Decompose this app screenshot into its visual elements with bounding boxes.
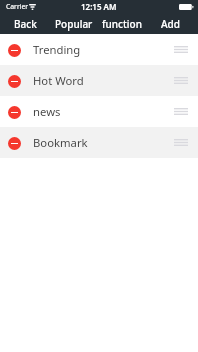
- staticText: Popular: [55, 17, 93, 31]
- button[interactable]: Add: [161, 14, 180, 28]
- staticText: Hot Word: [33, 73, 84, 88]
- button[interactable]: Delete: [8, 106, 21, 119]
- button[interactable]: Delete: [0, 96, 198, 127]
- button[interactable]: Delete: [0, 65, 198, 96]
- button[interactable]: Back: [14, 14, 37, 28]
- button[interactable]: Reorder: [174, 108, 188, 115]
- button[interactable]: Reorder: [174, 139, 188, 146]
- staticText: Trending: [33, 42, 81, 57]
- button[interactable]: Delete: [0, 34, 198, 65]
- staticText: Carrier: [6, 2, 29, 11]
- staticText: news: [33, 104, 61, 119]
- button[interactable]: Delete: [8, 44, 21, 57]
- button[interactable]: function: [102, 14, 142, 28]
- button[interactable]: Delete: [0, 127, 198, 158]
- staticText: function: [102, 17, 142, 31]
- staticText: 12:15 AM: [81, 1, 117, 12]
- button[interactable]: Delete: [8, 75, 21, 88]
- staticText: Bookmark: [33, 135, 88, 150]
- staticText: Add: [161, 17, 180, 31]
- button[interactable]: Delete: [8, 137, 21, 150]
- button[interactable]: Reorder: [174, 46, 188, 53]
- button[interactable]: Reorder: [174, 77, 188, 84]
- button[interactable]: Popular: [55, 14, 93, 28]
- staticText: Back: [14, 17, 37, 31]
